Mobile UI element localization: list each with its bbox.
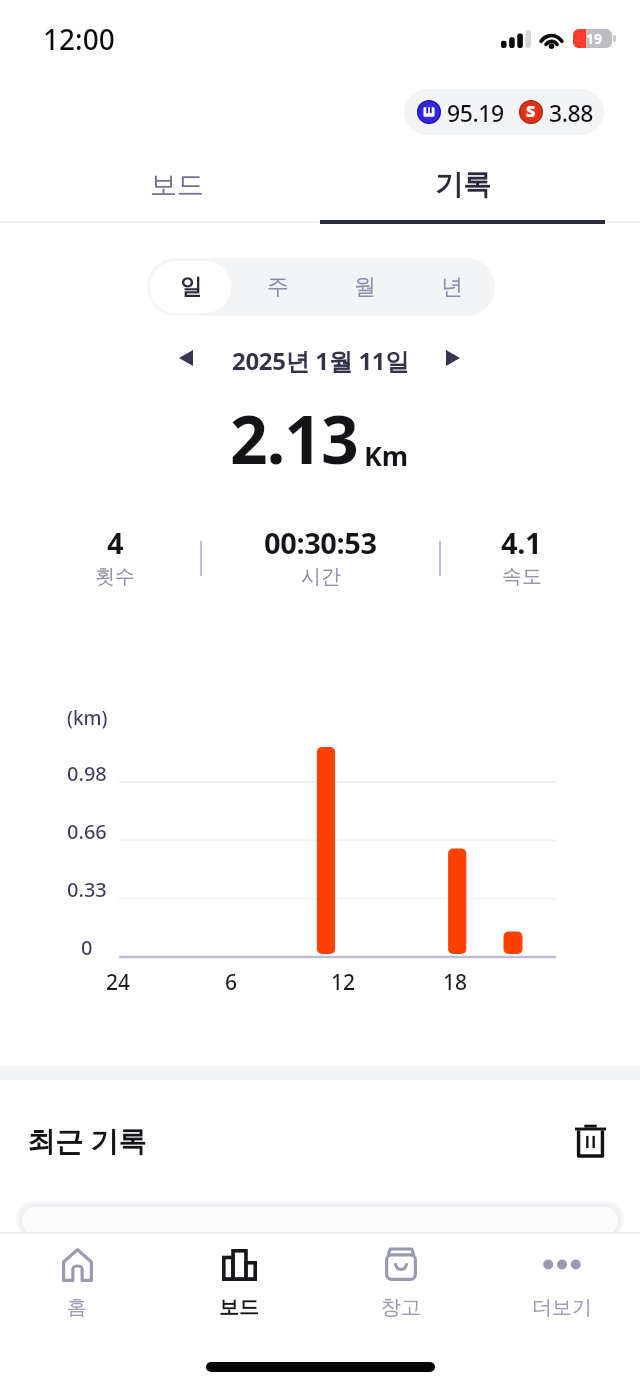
staticText: 속도	[502, 564, 542, 589]
button[interactable]: 더보기	[492, 1242, 632, 1334]
staticText: 2025년 1월 11일	[232, 344, 409, 377]
staticText: 0.33	[67, 876, 107, 903]
button[interactable]: 95.19	[404, 89, 604, 135]
staticText: 2.13	[230, 393, 358, 483]
staticText: 6	[225, 968, 238, 997]
button[interactable]: 월	[324, 261, 405, 313]
staticText: 최근 기록	[27, 1121, 147, 1159]
button[interactable]: Previous day	[158, 330, 214, 386]
staticText: Km	[364, 437, 408, 474]
button[interactable]: 보드	[37, 152, 317, 221]
button[interactable]: 년	[411, 261, 492, 313]
button[interactable]: Delete records	[566, 1117, 614, 1165]
staticText: 홈	[67, 1295, 87, 1320]
staticText: 보드	[219, 1295, 259, 1320]
staticText: 18	[443, 968, 468, 997]
staticText: 4.1	[501, 523, 542, 562]
staticText: 주	[267, 273, 289, 301]
button[interactable]: 보드	[169, 1242, 309, 1334]
staticText: 12	[331, 968, 356, 997]
staticText: 95.19	[447, 97, 504, 128]
button[interactable]: 일	[150, 261, 231, 313]
staticText: 00:30:53	[264, 523, 377, 562]
staticText: S	[526, 100, 536, 122]
button[interactable]: 기록	[323, 152, 603, 221]
staticText: 4	[107, 523, 124, 562]
button[interactable]: 홈	[7, 1242, 147, 1334]
staticText: (km)	[67, 705, 108, 731]
staticText: 일	[180, 273, 202, 301]
staticText: 더보기	[532, 1295, 592, 1320]
staticText: 0.98	[67, 760, 107, 787]
staticText: 3.88	[549, 97, 594, 128]
staticText: 기록	[435, 167, 491, 202]
staticText: 창고	[381, 1295, 421, 1320]
button[interactable]: 주	[237, 261, 318, 313]
staticText: 보드	[150, 168, 204, 202]
staticText: 19	[586, 29, 603, 48]
staticText: 횟수	[95, 564, 135, 589]
staticText: 0	[81, 934, 93, 961]
staticText: 시간	[301, 564, 341, 589]
staticText: 0.66	[67, 818, 107, 845]
button[interactable]: 창고	[331, 1242, 471, 1334]
staticText: 24	[106, 968, 131, 997]
button[interactable]: Next day	[425, 330, 481, 386]
staticText: 년	[441, 273, 463, 301]
staticText: 12:00	[43, 20, 115, 58]
staticText: 월	[354, 273, 376, 301]
